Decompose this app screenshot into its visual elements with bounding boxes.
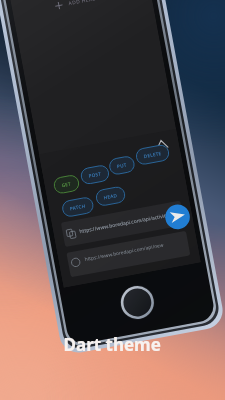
button[interactable]: Rest API Client dark theme preview (0, 0, 225, 400)
